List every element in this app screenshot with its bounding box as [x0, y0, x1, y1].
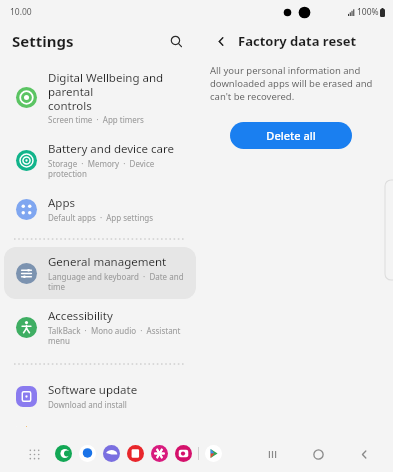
button[interactable]: All apps [24, 444, 44, 464]
button[interactable]: Home [305, 441, 331, 467]
staticText: TalkBack · Mono audio · Assistant menu [48, 325, 188, 346]
button[interactable]: Phone [55, 445, 72, 462]
button[interactable]: App [151, 445, 168, 462]
staticText: 10.00 [10, 6, 32, 18]
button[interactable]: Camera [175, 445, 192, 462]
button[interactable]: Recents [259, 441, 285, 467]
button[interactable]: Back [351, 441, 377, 467]
staticText: Default apps · App settings [48, 212, 154, 223]
staticText: Language and keyboard · Date and time [48, 271, 188, 292]
button[interactable]: Software update [4, 375, 196, 417]
button[interactable]: Back [210, 30, 232, 52]
staticText: All your personal information and downlo… [210, 64, 383, 103]
staticText: Apps [48, 195, 76, 211]
button[interactable]: Notes [127, 445, 144, 462]
staticText: Settings [12, 31, 74, 51]
staticText: Delete all [266, 128, 316, 143]
staticText: Storage · Memory · Device protection [48, 158, 188, 179]
button[interactable]: Messages [79, 445, 96, 462]
staticText: 100% [357, 6, 379, 18]
button[interactable]: Play Store [205, 445, 222, 462]
staticText: General management [48, 254, 167, 270]
button[interactable]: Battery and device care [4, 134, 196, 186]
staticText: Screen time · App timers [48, 114, 144, 125]
button[interactable]: Digital Wellbeing and parental controls [4, 63, 196, 132]
button[interactable]: Apps [4, 188, 196, 230]
button[interactable]: Search [164, 29, 188, 53]
staticText: Accessibility [48, 308, 113, 324]
button[interactable]: Accessibility [4, 301, 196, 353]
staticText: Software update [48, 382, 138, 398]
staticText: Battery and device care [48, 141, 175, 157]
button[interactable]: General management [4, 247, 196, 299]
button[interactable]: Delete all [230, 122, 352, 149]
staticText: Download and install [48, 399, 127, 410]
button[interactable]: Internet [103, 445, 120, 462]
staticText: Factory data reset [238, 32, 357, 50]
staticText: Digital Wellbeing and parental controls [48, 70, 188, 113]
